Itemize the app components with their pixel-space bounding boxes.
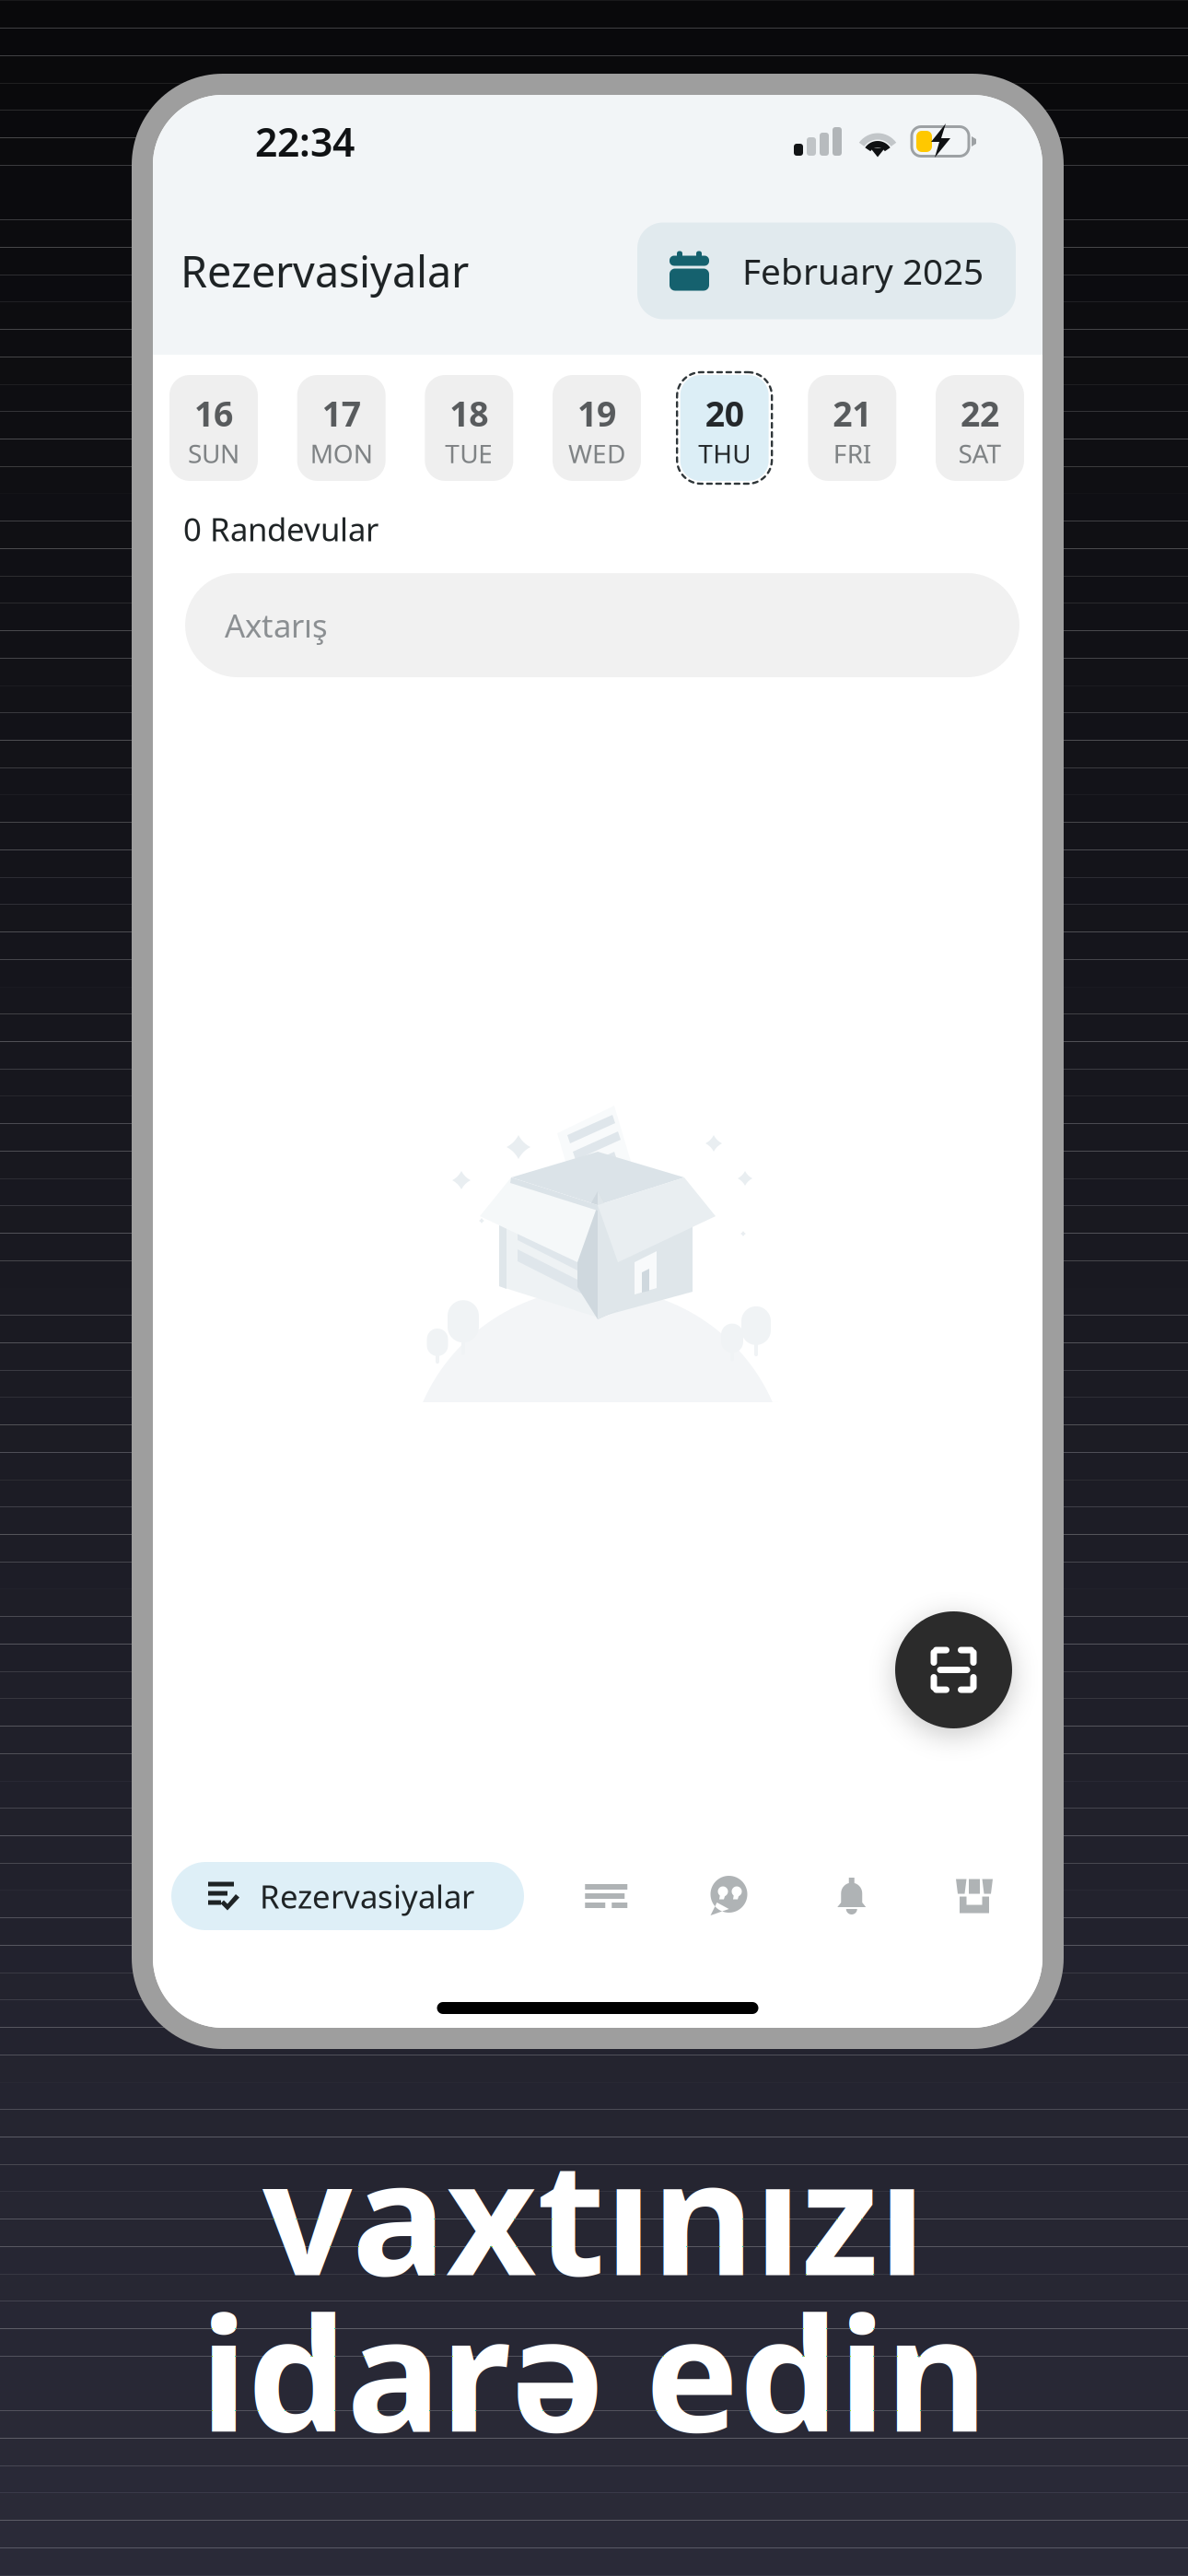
staticText: 22 xyxy=(961,390,999,436)
button[interactable]: 21 xyxy=(808,375,896,481)
button[interactable]: 19 xyxy=(553,375,641,481)
staticText: 18 xyxy=(450,390,488,436)
button[interactable]: February 2025 xyxy=(637,222,1016,319)
button[interactable]: Bildirişlər xyxy=(811,1862,892,1930)
button[interactable]: Rezervasiyalar xyxy=(171,1862,524,1930)
staticText: 16 xyxy=(194,390,233,436)
staticText: idarə edin xyxy=(200,2266,988,2475)
staticText: MON xyxy=(310,436,373,470)
staticText: SUN xyxy=(188,436,239,470)
staticText: 21 xyxy=(833,390,871,436)
staticText: 20 xyxy=(705,390,744,436)
button[interactable]: Rəylər xyxy=(688,1862,769,1930)
staticText: 17 xyxy=(322,390,361,436)
button[interactable]: 18 xyxy=(425,375,513,481)
staticText: TUE xyxy=(445,436,493,470)
staticText: 19 xyxy=(577,390,616,436)
staticText: Rezervasiyalar xyxy=(260,1875,474,1917)
button[interactable]: 16 xyxy=(169,375,258,481)
staticText: SAT xyxy=(958,436,1002,470)
staticText: February 2025 xyxy=(742,247,984,294)
staticText: Axtarış xyxy=(225,604,328,646)
staticText: WED xyxy=(568,436,625,470)
staticText: 0 Randevular xyxy=(183,508,379,550)
staticText: THU xyxy=(698,436,751,470)
staticText: vaxtınızı xyxy=(262,2110,926,2319)
staticText: Rezervasiyalar xyxy=(181,242,469,299)
button[interactable]: 22 xyxy=(936,375,1024,481)
button[interactable]: Siyahı xyxy=(566,1862,647,1930)
button[interactable]: 17 xyxy=(297,375,386,481)
button[interactable]: Scan code xyxy=(895,1611,1012,1728)
staticText: 22:34 xyxy=(255,115,355,168)
button[interactable]: 20 xyxy=(680,375,769,481)
staticText: FRI xyxy=(833,436,871,470)
button[interactable]: Mağaza xyxy=(934,1862,1015,1930)
